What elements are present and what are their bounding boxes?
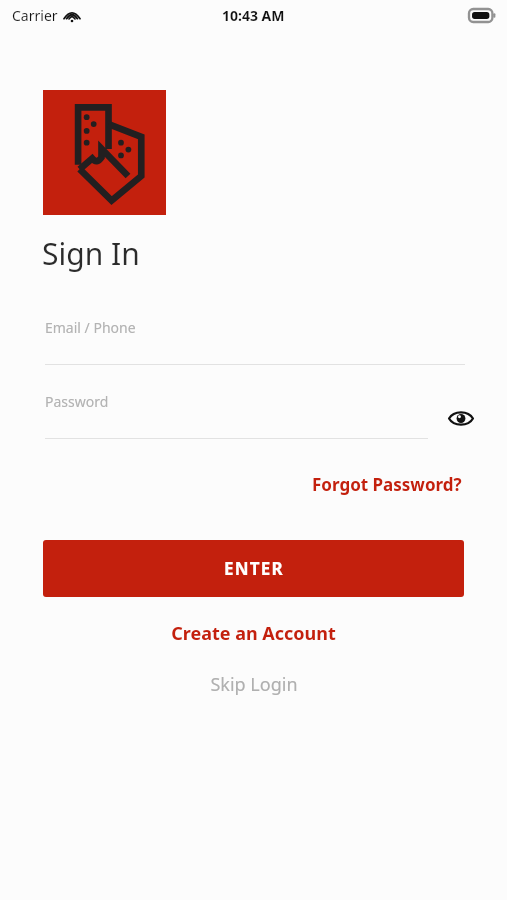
staticText: Skip Login <box>210 672 298 697</box>
button[interactable]: Show password <box>441 398 481 438</box>
staticText: Email / Phone <box>45 318 136 337</box>
staticText: ENTER <box>224 557 284 580</box>
button[interactable]: Email / Phone <box>0 318 507 365</box>
button[interactable]: App logo <box>43 90 166 215</box>
staticText: Create an Account <box>171 621 336 646</box>
button[interactable]: Create an Account <box>157 613 350 654</box>
staticText: Forgot Password? <box>312 473 462 496</box>
staticText: Carrier <box>12 6 58 25</box>
staticText: Password <box>45 392 109 411</box>
staticText: 10:43 AM <box>222 6 285 25</box>
button[interactable]: Password <box>0 392 507 439</box>
button[interactable]: Skip Login <box>196 664 312 705</box>
button[interactable]: Forgot Password? <box>302 467 472 502</box>
button[interactable]: ENTER <box>43 540 464 597</box>
staticText: Sign In <box>42 233 140 274</box>
